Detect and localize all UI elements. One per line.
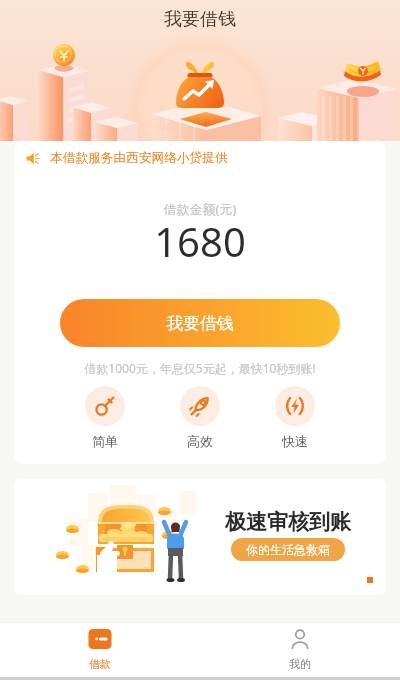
button[interactable]: 我的 xyxy=(200,623,400,671)
button[interactable]: Announcement xyxy=(26,141,386,175)
staticText: 你的生活急救箱 xyxy=(246,542,330,557)
staticText: 我要借钱 xyxy=(166,313,234,334)
staticText: 快速 xyxy=(282,433,308,449)
staticText: 借款1000元，年息仅5元起，最快10秒到账! xyxy=(14,360,386,376)
staticText: 简单 xyxy=(92,433,118,449)
staticText: 我要借钱 xyxy=(164,8,236,31)
staticText: 本借款服务由西安网络小贷提供 xyxy=(50,150,228,166)
other: 借款 xyxy=(88,629,112,649)
button[interactable]: 快速 xyxy=(275,386,315,449)
staticText: 高效 xyxy=(187,433,213,449)
staticText: 借款金额(元) xyxy=(14,200,386,218)
staticText: 1680 xyxy=(14,214,386,258)
other: 我的 xyxy=(288,629,312,649)
other: Announcement xyxy=(26,151,41,166)
staticText: 借款 xyxy=(89,657,111,671)
button[interactable]: 简单 xyxy=(85,386,125,449)
staticText: 极速审核到账 xyxy=(225,509,351,535)
button[interactable]: 借款 xyxy=(0,623,200,671)
button[interactable]: 我要借钱 xyxy=(60,299,340,347)
button[interactable]: 高效 xyxy=(180,386,220,449)
staticText: 我的 xyxy=(289,657,311,671)
button[interactable]: 极速审核到账 xyxy=(14,479,386,595)
